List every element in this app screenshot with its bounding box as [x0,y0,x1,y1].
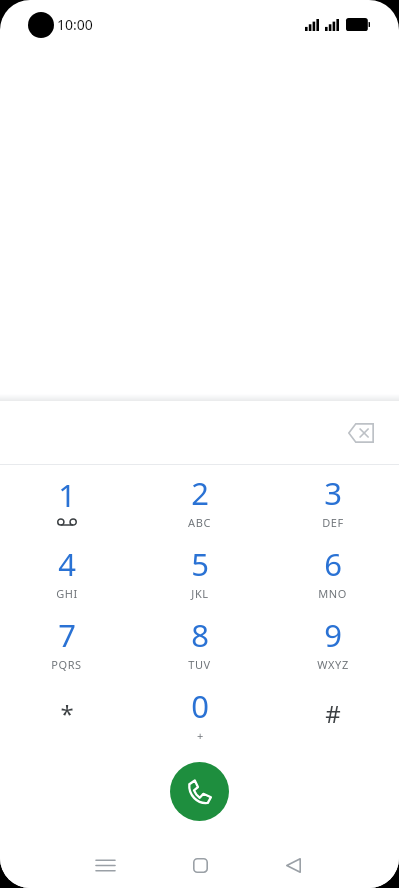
button[interactable]: 6 [266,536,399,607]
button[interactable]: 7 [0,607,133,678]
staticText: TUV [188,657,211,672]
button[interactable]: 0 [133,678,266,749]
button[interactable]: 4 [0,536,133,607]
staticText: ABC [188,515,211,530]
button[interactable]: * [0,678,133,749]
staticText: * [60,697,74,730]
staticText: 8 [191,614,209,656]
staticText: PQRS [51,657,82,672]
button[interactable]: 3 [266,465,399,536]
staticText: # [325,697,341,730]
staticText: WXYZ [317,657,349,672]
staticText: 2 [191,472,209,514]
button[interactable]: Call [170,762,229,821]
staticText: 4 [58,543,76,585]
staticText: 7 [58,614,76,656]
staticText: JKL [191,586,209,601]
staticText: 10:00 [57,15,93,34]
button[interactable]: 5 [133,536,266,607]
button[interactable]: Home [176,842,224,888]
staticText: 1 [58,474,76,516]
staticText: GHI [56,586,78,601]
staticText: 6 [324,543,342,585]
button[interactable]: 2 [133,465,266,536]
button[interactable]: Back [269,842,317,888]
staticText: 0 [191,685,209,727]
button[interactable]: 1 [0,465,133,536]
staticText: + [197,728,204,743]
staticText: 9 [324,614,342,656]
button[interactable]: 9 [266,607,399,678]
staticText: MNO [318,586,347,601]
staticText: DEF [322,515,344,530]
staticText: 5 [191,543,209,585]
button[interactable]: Recents [81,842,129,888]
button[interactable]: Backspace [337,409,385,457]
button[interactable]: # [266,678,399,749]
staticText: 3 [324,472,342,514]
button[interactable]: 8 [133,607,266,678]
